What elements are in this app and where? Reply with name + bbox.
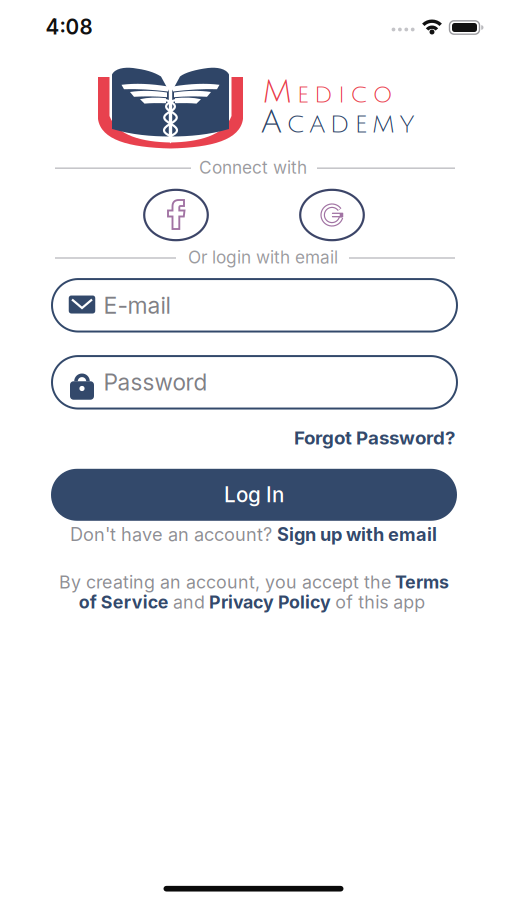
staticText: E	[354, 111, 367, 138]
staticText: D	[330, 111, 350, 138]
staticText: E-mail	[103, 291, 170, 319]
staticText: Terms	[395, 571, 449, 593]
staticText: Forgot Password?	[294, 426, 455, 449]
staticText: Password	[103, 368, 207, 396]
staticText: Or login with email	[188, 247, 338, 268]
staticText: Y	[400, 111, 415, 138]
button[interactable]: Log In	[51, 469, 457, 521]
button[interactable]: Sign up with email	[277, 523, 437, 545]
staticText: Connect with	[199, 157, 307, 178]
staticText: Log In	[224, 482, 284, 507]
staticText: C	[287, 111, 305, 138]
staticText: By creating an account, you accept the	[59, 571, 391, 593]
staticText: and	[173, 591, 205, 613]
staticText: E	[297, 83, 309, 108]
staticText: Don't have an account?	[70, 523, 272, 545]
button[interactable]: Connect with Facebook	[143, 188, 209, 241]
button[interactable]: Terms	[395, 571, 449, 593]
button[interactable]: Forgot Password?	[155, 426, 455, 449]
staticText: C	[350, 83, 367, 108]
staticText: M	[372, 111, 395, 138]
staticText: A	[261, 105, 282, 140]
button[interactable]: of Service	[79, 591, 169, 613]
staticText: 4:08	[45, 14, 92, 39]
staticText: O	[372, 83, 392, 108]
staticText: of Service	[79, 591, 169, 613]
staticText: M	[262, 75, 291, 110]
staticText: Privacy Policy	[209, 591, 331, 613]
button[interactable]: Connect with Google	[299, 188, 365, 241]
staticText: I	[338, 83, 345, 108]
staticText: Sign up with email	[277, 523, 437, 545]
button[interactable]: Privacy Policy	[209, 591, 331, 613]
staticText: A	[309, 111, 325, 138]
staticText: D	[314, 83, 333, 108]
staticText: of this app	[335, 591, 425, 613]
